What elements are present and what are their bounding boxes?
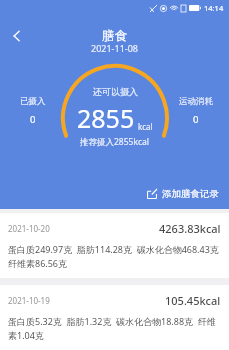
staticText: 蛋白质5.32克 脂肪1.32克 碳水化合物18.88克 纤维素1.04克 <box>8 315 221 342</box>
staticText: 2021-11-08 <box>0 42 229 54</box>
button[interactable]: 2021-10-19 <box>0 285 229 350</box>
staticText: 105.45kcal <box>165 293 221 308</box>
staticText: 14:14 <box>204 3 224 13</box>
staticText: kcal <box>138 121 153 132</box>
staticText: 运动消耗 <box>179 96 213 107</box>
staticText: 添加膳食记录 <box>162 188 219 200</box>
staticText: 2021-10-19 <box>8 295 50 306</box>
staticText: 还可以摄入 <box>93 86 138 97</box>
staticText: 0 <box>30 113 36 126</box>
staticText: 蛋白质249.97克 脂肪114.28克 碳水化合物468.43克 纤维素86.… <box>8 243 221 270</box>
button[interactable]: 添加膳食记录 <box>137 185 229 203</box>
staticText: 4263.83kcal <box>159 221 221 236</box>
staticText: 2021-10-20 <box>8 223 50 234</box>
staticText: 推荐摄入2855kcal <box>80 136 150 148</box>
staticText: 2855 <box>77 101 135 135</box>
staticText: 膳食 <box>102 28 127 44</box>
staticText: 已摄入 <box>20 96 46 107</box>
button[interactable]: 返回 <box>0 19 34 53</box>
staticText: 0 <box>193 113 199 126</box>
button[interactable]: 2021-10-20 <box>0 213 229 278</box>
